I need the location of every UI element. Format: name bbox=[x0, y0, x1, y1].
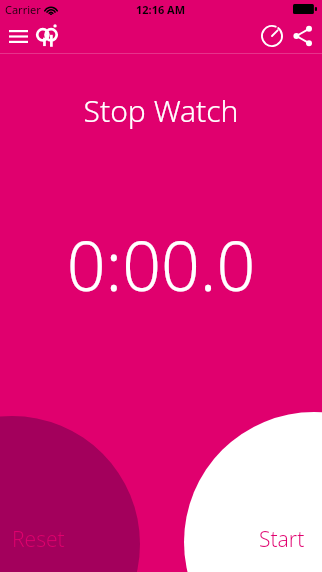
staticText: Start bbox=[259, 525, 305, 554]
button[interactable]: Logo bbox=[33, 21, 63, 51]
staticText: Carrier bbox=[5, 2, 41, 17]
button[interactable] bbox=[0, 416, 140, 572]
staticText: Stop Watch bbox=[0, 90, 322, 131]
staticText: 0:00.0 bbox=[0, 218, 322, 311]
button[interactable] bbox=[184, 412, 322, 572]
staticText: 12:16 AM bbox=[136, 2, 186, 17]
button[interactable]: Share bbox=[287, 20, 319, 52]
button[interactable]: Menu bbox=[4, 22, 32, 50]
staticText: Reset bbox=[12, 525, 65, 554]
button[interactable]: Timer history bbox=[256, 20, 288, 52]
